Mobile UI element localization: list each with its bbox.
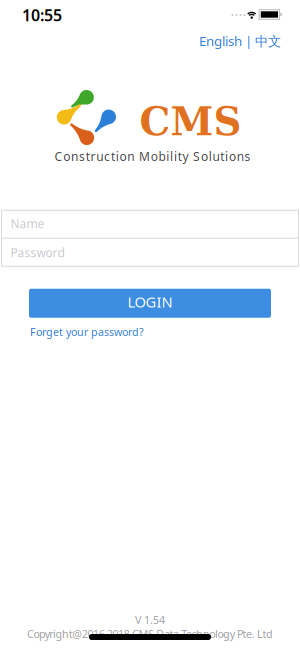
staticText: English | 中文: [199, 32, 281, 50]
staticText: 10:55: [22, 4, 62, 26]
button[interactable]: English | 中文: [199, 32, 281, 50]
button[interactable]: Forget your password?: [30, 325, 144, 339]
staticText: Forget your password?: [30, 325, 144, 339]
staticText: V 1.54: [135, 613, 165, 627]
staticText: Construction Mobility Solutions: [54, 148, 250, 164]
button[interactable]: LOGIN: [29, 289, 271, 318]
button[interactable]: Password: [1, 239, 299, 267]
staticText: Copyright@2016-2018 CMS Data Technology …: [27, 627, 273, 641]
staticText: LOGIN: [127, 292, 172, 311]
staticText: Password: [10, 245, 64, 261]
staticText: CMS: [139, 99, 241, 144]
staticText: Name: [10, 216, 44, 232]
button[interactable]: Name: [1, 210, 299, 238]
